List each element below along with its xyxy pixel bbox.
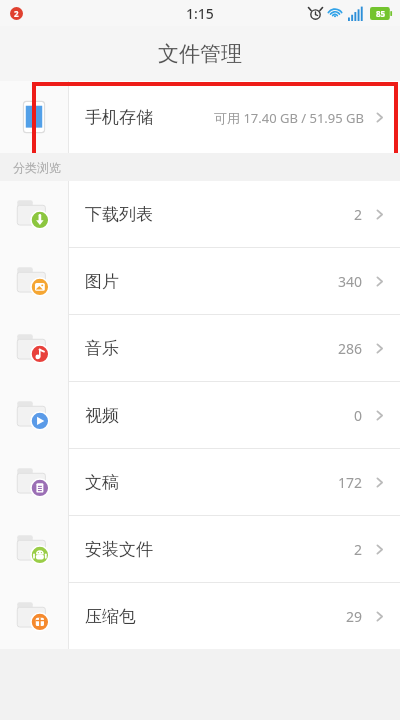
button[interactable]: 音乐 (0, 315, 400, 381)
button[interactable]: 手机存储 (0, 81, 400, 153)
staticText: 85 (376, 8, 386, 19)
staticText: 1:15 (186, 4, 214, 23)
button[interactable]: 下载列表 (0, 181, 400, 247)
staticText: 文稿 (85, 472, 119, 493)
staticText: 手机存储 (85, 107, 153, 128)
button[interactable]: 图片 (0, 248, 400, 314)
staticText: 340 (338, 272, 363, 291)
staticText: 文件管理 (158, 41, 242, 67)
staticText: 172 (338, 473, 363, 492)
staticText: 安装文件 (85, 539, 153, 560)
staticText: 可用 17.40 GB / 51.95 GB (214, 109, 365, 127)
staticText: 2 (14, 8, 19, 19)
staticText: 2 (354, 540, 363, 559)
button[interactable]: 压缩包 (0, 583, 400, 649)
button[interactable]: 视频 (0, 382, 400, 448)
button[interactable]: 安装文件 (0, 516, 400, 582)
staticText: 压缩包 (85, 606, 136, 627)
button[interactable]: 文稿 (0, 449, 400, 515)
staticText: 音乐 (85, 338, 119, 359)
staticText: 286 (338, 339, 363, 358)
staticText: 图片 (85, 271, 119, 292)
staticText: 分类浏览 (13, 160, 61, 175)
staticText: 下载列表 (85, 204, 153, 225)
staticText: 0 (354, 406, 363, 425)
staticText: 视频 (85, 405, 119, 426)
staticText: 29 (346, 607, 363, 626)
staticText: 2 (354, 205, 363, 224)
